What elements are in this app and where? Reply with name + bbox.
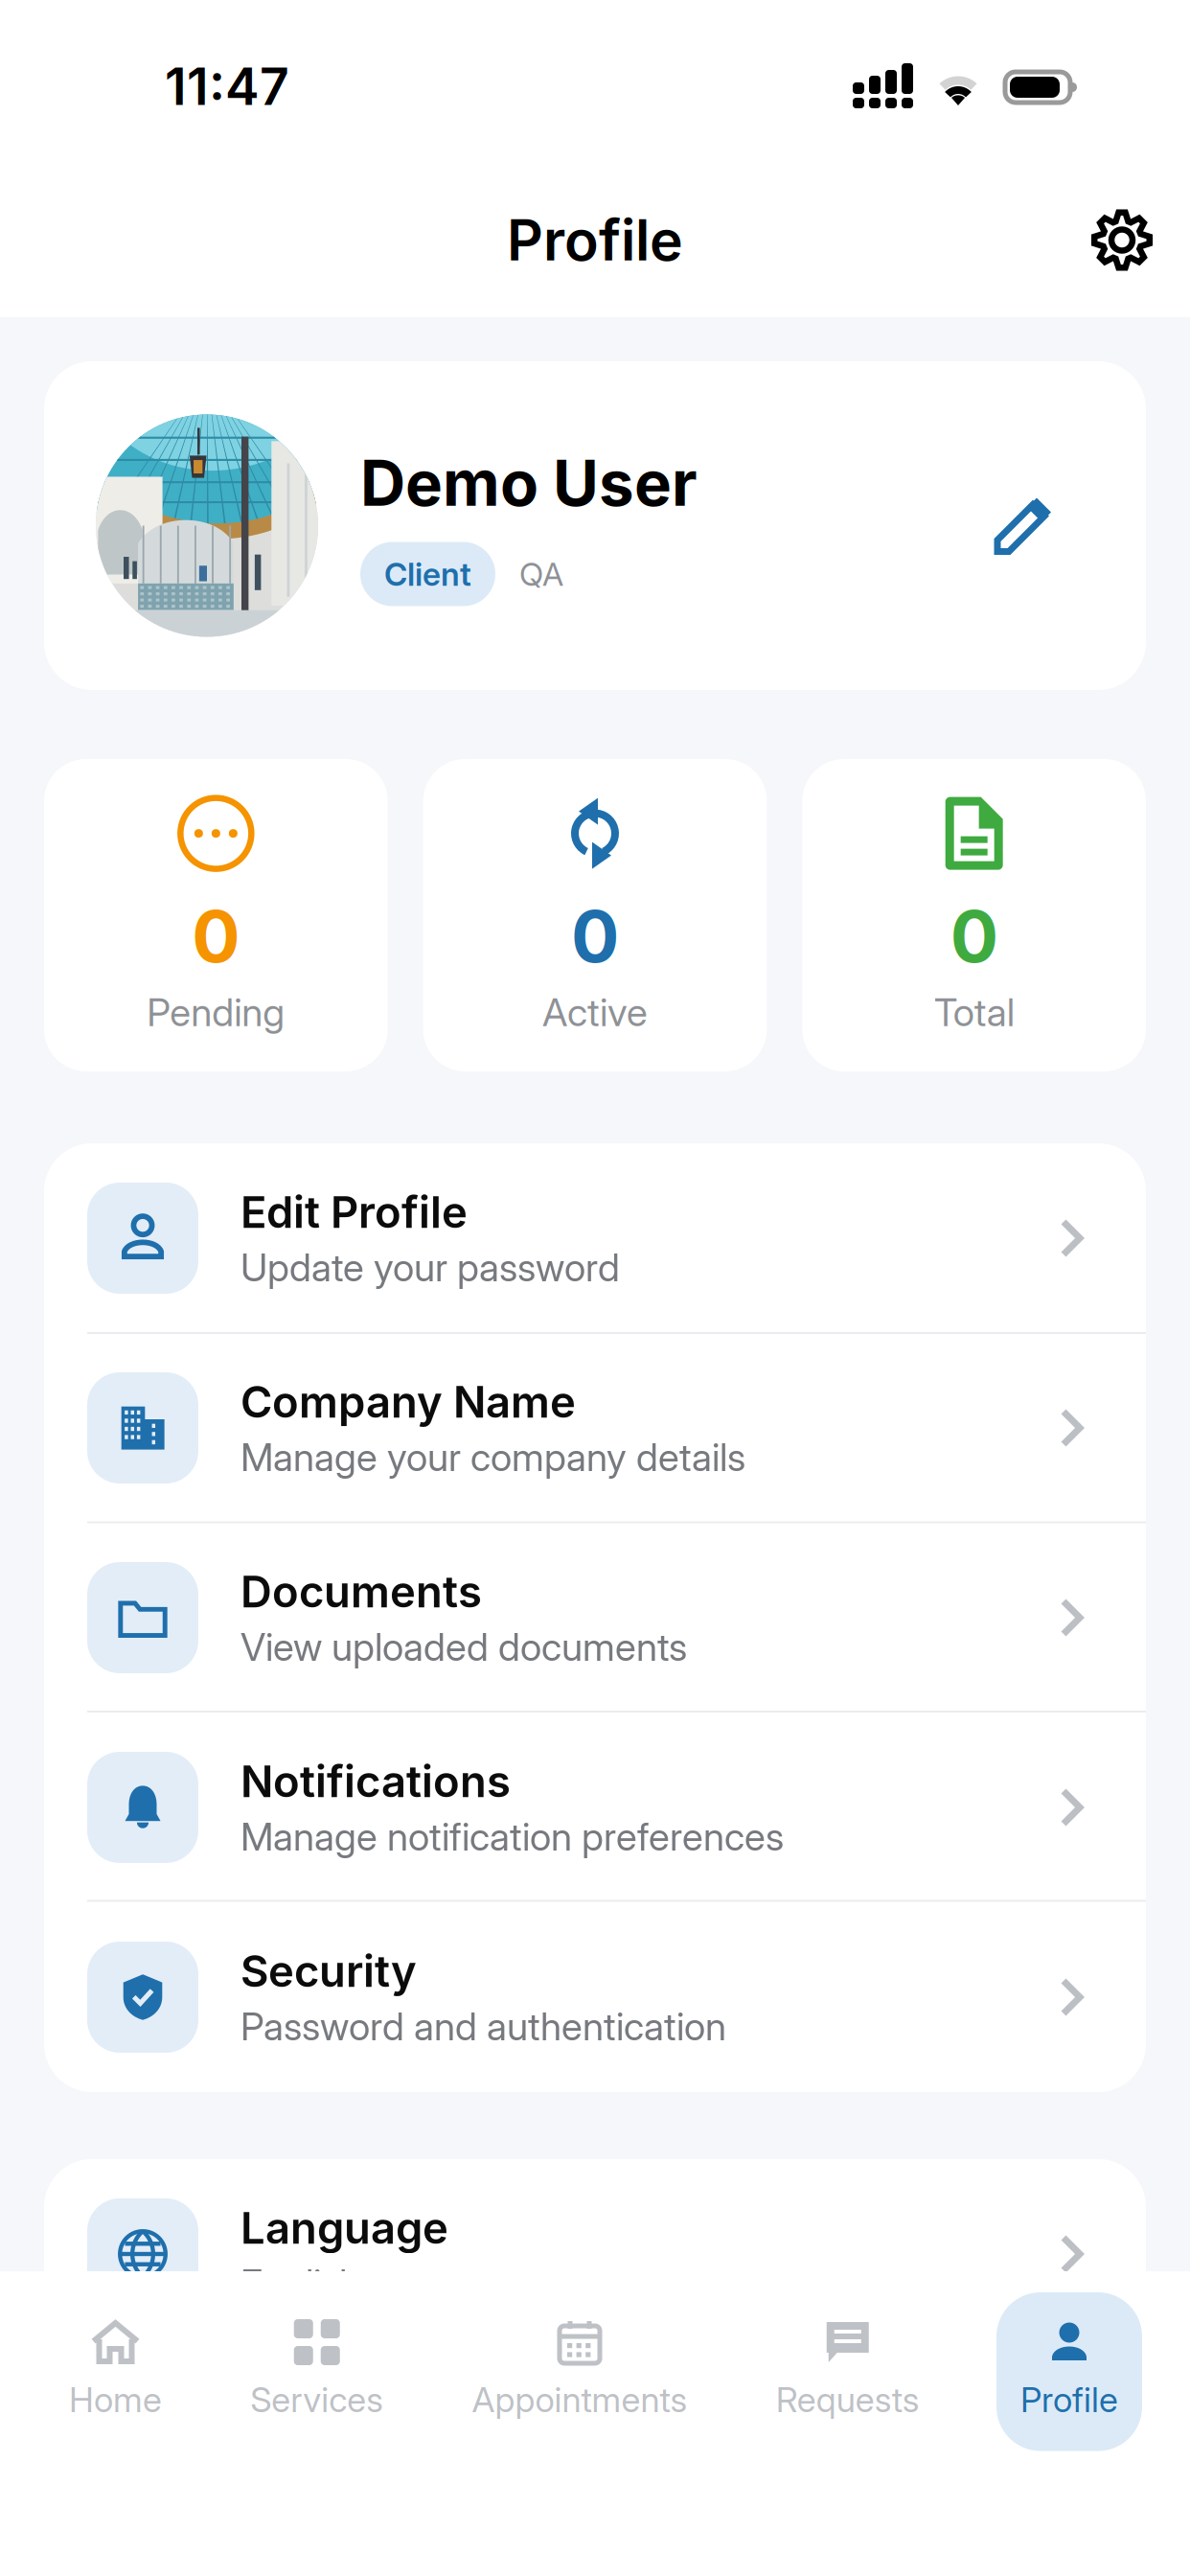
button[interactable]: Help & Support: [44, 2349, 1146, 2539]
staticText: Total: [934, 989, 1014, 1035]
staticText: QA: [519, 555, 563, 593]
staticText: Requests: [776, 2379, 920, 2420]
staticText: Notifications: [240, 1755, 511, 1808]
staticText: Home: [69, 2379, 162, 2420]
staticText: 0: [950, 893, 998, 979]
staticText: Update your password: [240, 1244, 620, 1290]
button[interactable]: Edit Profile: [44, 1143, 1146, 1333]
staticText: 0: [192, 893, 240, 979]
button[interactable]: Home: [57, 2292, 173, 2451]
staticText: Pending: [147, 989, 285, 1035]
button[interactable]: Profile: [996, 2292, 1142, 2451]
staticText: Documents: [240, 1565, 482, 1618]
button[interactable]: Security: [44, 1902, 1146, 2092]
staticText: Demo User: [360, 445, 698, 521]
staticText: View uploaded documents: [240, 1624, 687, 1670]
staticText: Help & Support: [240, 2391, 556, 2444]
button[interactable]: Documents: [44, 1523, 1146, 1713]
staticText: Profile: [1020, 2379, 1118, 2420]
button[interactable]: Company Name: [44, 1333, 1146, 1523]
staticText: Edit Profile: [240, 1186, 468, 1238]
staticText: Company Name: [240, 1376, 576, 1428]
staticText: 11:47: [165, 55, 289, 117]
staticText: Security: [240, 1945, 417, 1997]
staticText: Services: [250, 2379, 383, 2420]
button[interactable]: Edit profile: [992, 494, 1055, 557]
staticText: Password and authentication: [240, 2003, 726, 2049]
button[interactable]: Language: [44, 2159, 1146, 2349]
staticText: 0: [571, 893, 619, 979]
staticText: Appointments: [472, 2379, 687, 2420]
staticText: Manage your company details: [240, 1434, 745, 1480]
staticText: English: [240, 2260, 360, 2306]
button[interactable]: Notifications: [44, 1713, 1146, 1902]
button[interactable]: Services: [239, 2292, 395, 2451]
staticText: Client: [384, 555, 471, 593]
staticText: Manage notification preferences: [240, 1813, 784, 1860]
staticText: Profile: [507, 206, 683, 274]
staticText: Active: [542, 989, 648, 1035]
button[interactable]: Settings: [1092, 210, 1152, 270]
button[interactable]: Appointments: [460, 2292, 699, 2451]
button[interactable]: Requests: [764, 2292, 931, 2451]
staticText: Language: [240, 2202, 448, 2254]
